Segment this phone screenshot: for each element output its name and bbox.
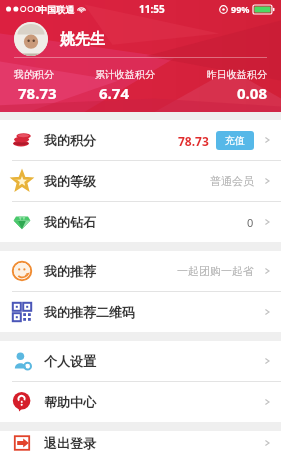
staticText: 一起团购一起省 <box>177 264 254 278</box>
staticText: 11:55 <box>139 2 165 16</box>
staticText: 昨日收益积分 <box>185 68 267 81</box>
staticText: 78.73 <box>178 133 209 149</box>
button[interactable]: Level <box>0 161 281 201</box>
staticText: 78.73 <box>18 83 95 103</box>
staticText: 普通会员 <box>210 174 254 188</box>
other: Referrals <box>12 261 32 281</box>
staticText: 中国联通 <box>38 4 74 15</box>
staticText: 帮助中心 <box>44 394 96 410</box>
staticText: 0.08 <box>185 83 267 103</box>
staticText: 0 <box>247 215 254 230</box>
button[interactable]: Diamonds <box>0 202 281 242</box>
other: Level <box>12 171 32 191</box>
button[interactable]: Points <box>0 120 281 160</box>
staticText: 我的推荐二维码 <box>44 304 135 320</box>
staticText: 我的等级 <box>44 173 96 189</box>
staticText: 99% <box>231 3 250 15</box>
staticText: 充值 <box>225 134 245 147</box>
staticText: 我的积分 <box>14 68 95 81</box>
other: Points <box>12 130 32 150</box>
button[interactable]: Log out <box>0 431 281 455</box>
staticText: 累计收益积分 <box>95 68 185 81</box>
other: Diamonds <box>12 212 32 232</box>
staticText: 我的钻石 <box>44 214 96 230</box>
button[interactable]: Referrals <box>0 251 281 291</box>
staticText: 我的推荐 <box>44 263 96 279</box>
button[interactable]: 充值 <box>216 131 254 150</box>
other: Log out <box>12 433 32 453</box>
button[interactable]: My QR code <box>0 292 281 332</box>
other: Help center <box>12 392 32 412</box>
button[interactable]: 姚先生 <box>14 22 105 56</box>
staticText: 姚先生 <box>60 30 105 49</box>
other: My QR code <box>12 302 32 322</box>
button[interactable]: Help center <box>0 382 281 422</box>
staticText: 退出登录 <box>44 435 96 451</box>
other: Personal settings <box>12 351 32 371</box>
staticText: 6.74 <box>99 83 185 103</box>
staticText: 我的积分 <box>44 132 96 148</box>
staticText: 个人设置 <box>44 353 96 369</box>
button[interactable]: Personal settings <box>0 341 281 381</box>
